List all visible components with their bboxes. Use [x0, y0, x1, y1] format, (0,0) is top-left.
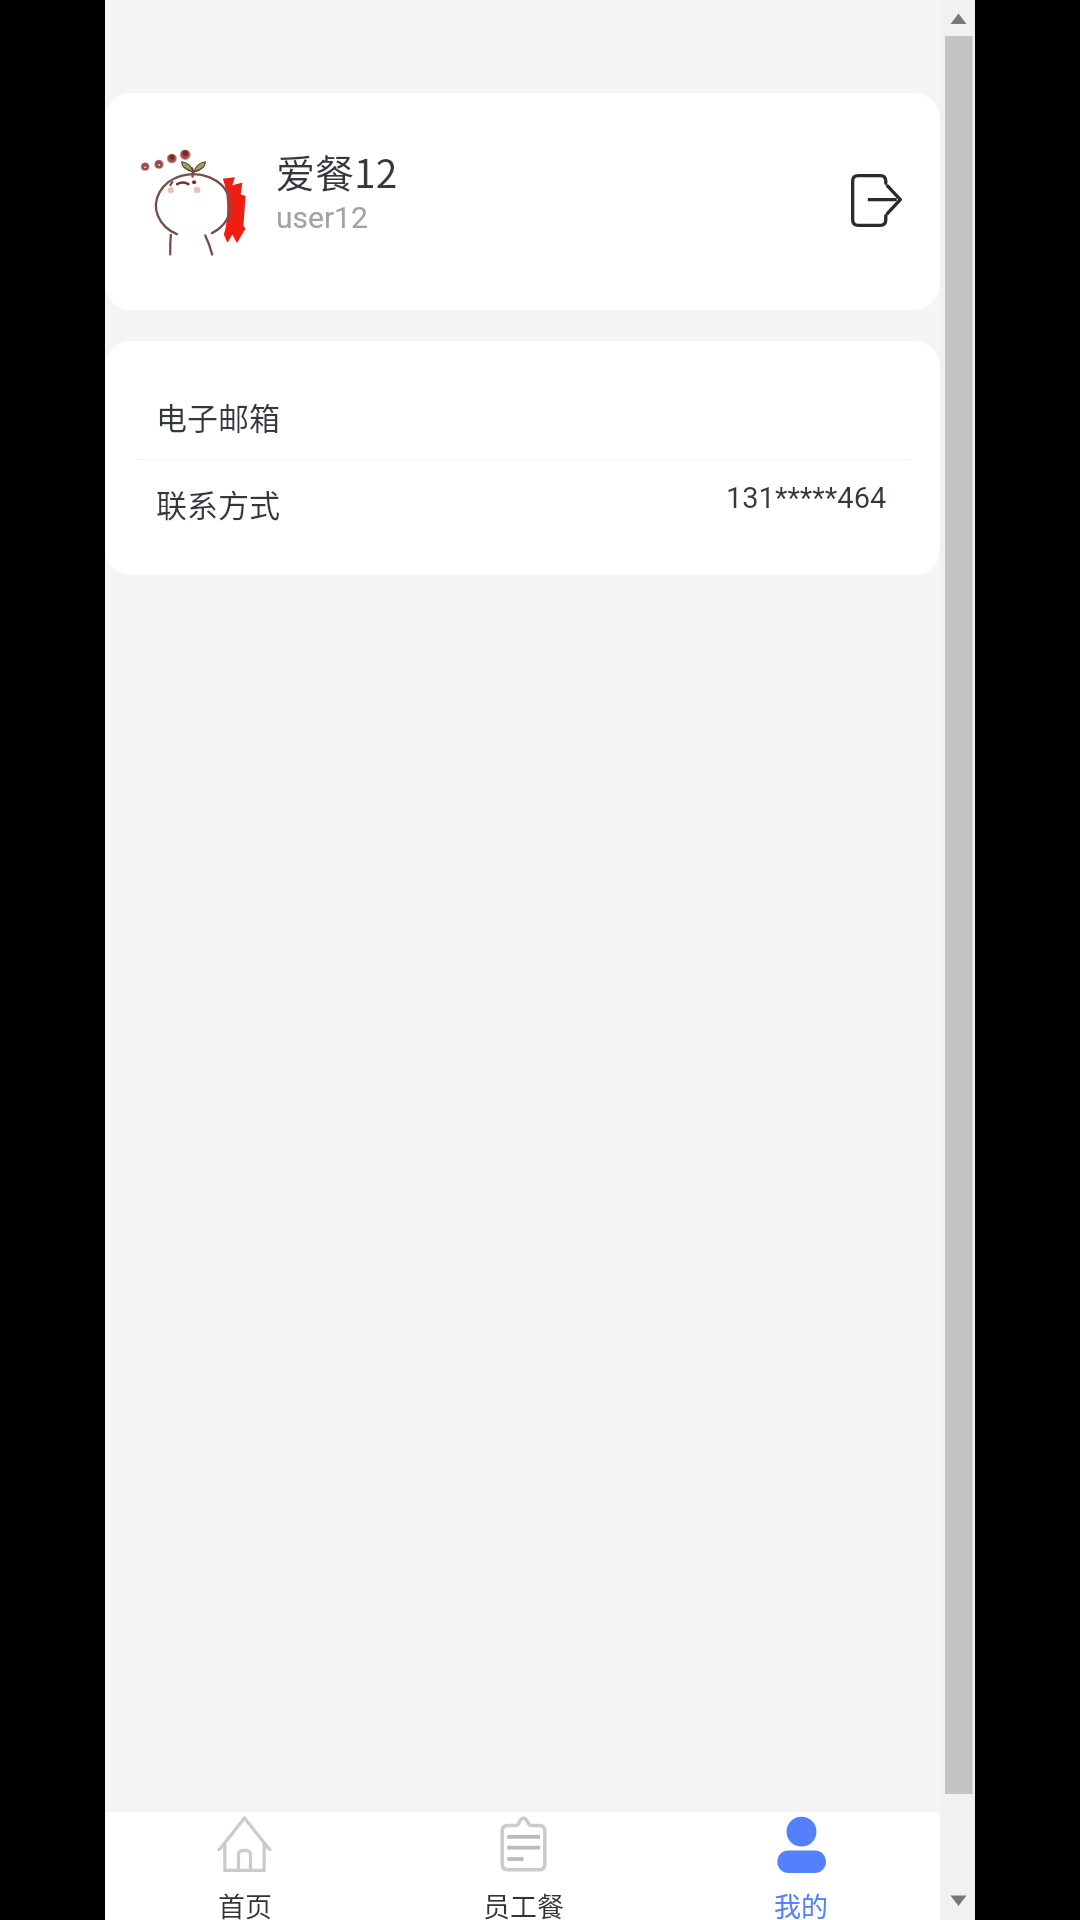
staticText: user12 [276, 200, 368, 235]
button[interactable]: 电子邮箱 [105, 373, 940, 459]
button[interactable]: 员工餐 [384, 1812, 662, 1920]
button[interactable]: Logout [839, 165, 913, 235]
staticText: 员工餐 [483, 1886, 564, 1920]
button[interactable]: 我的 [662, 1812, 940, 1920]
button[interactable]: 爱餐12 [105, 93, 940, 310]
button[interactable]: 首页 [105, 1812, 384, 1920]
staticText: 联系方式 [156, 481, 280, 526]
staticText: 131*****464 [726, 481, 887, 515]
staticText: 首页 [218, 1886, 272, 1920]
staticText: 电子邮箱 [156, 394, 280, 439]
staticText: 爱餐12 [276, 143, 398, 199]
staticText: 我的 [774, 1886, 828, 1920]
button[interactable]: 联系方式 [105, 460, 940, 546]
